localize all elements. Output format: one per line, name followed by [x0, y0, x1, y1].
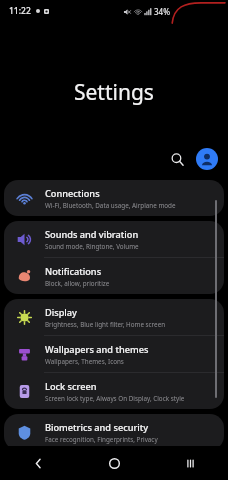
button[interactable]: Account [196, 148, 218, 170]
button[interactable]: Sounds and vibration [4, 221, 224, 257]
staticText: Display [45, 306, 77, 319]
staticText: Lock screen [45, 380, 97, 393]
staticText: Face recognition, Fingerprints, Privacy [45, 435, 158, 444]
button[interactable]: Back [0, 446, 76, 480]
button[interactable]: Biometrics and security [4, 414, 224, 450]
staticText: Notifications [45, 265, 102, 278]
staticText: 34% [154, 6, 170, 17]
staticText: Wi-Fi, Bluetooth, Data usage, Airplane m… [45, 201, 176, 210]
staticText: Wallpapers and themes [45, 343, 149, 356]
staticText: Sounds and vibration [45, 228, 139, 241]
staticText: Screen lock type, Always On Display, Clo… [45, 394, 185, 403]
button[interactable]: Display [4, 299, 224, 335]
button[interactable]: Home [76, 446, 152, 480]
staticText: Wallpapers, Themes, Icons [45, 357, 124, 366]
button[interactable]: Notifications [4, 258, 224, 294]
button[interactable]: Search [164, 146, 190, 172]
staticText: Settings [74, 78, 154, 107]
staticText: Block, allow, prioritize [45, 279, 110, 288]
button[interactable]: Recents [152, 446, 228, 480]
staticText: 11:22 [9, 5, 31, 17]
staticText: Biometrics and security [45, 421, 149, 434]
button[interactable]: Wallpapers and themes [4, 336, 224, 372]
button[interactable]: Lock screen [4, 373, 224, 409]
button[interactable]: Connections [4, 180, 224, 216]
staticText: Sound mode, Ringtone, Volume [45, 242, 139, 251]
staticText: Connections [45, 187, 100, 200]
staticText: Brightness, Blue light filter, Home scre… [45, 320, 166, 329]
